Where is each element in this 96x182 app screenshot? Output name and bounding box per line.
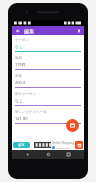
button[interactable]: 価格	[15, 56, 81, 70]
staticText: なし	[15, 98, 24, 103]
staticText: なし	[15, 44, 24, 49]
staticText: 新しいカテゴリー名	[15, 110, 47, 114]
staticText: Google Play	[56, 146, 70, 149]
staticText: 200.0	[15, 80, 26, 85]
staticText: 割引クーポン	[15, 92, 37, 96]
button[interactable]: Online Shopping	[34, 140, 74, 149]
button[interactable]: Back	[14, 27, 21, 34]
button[interactable]: 割引クーポン	[15, 92, 81, 106]
staticText: 141.80	[15, 116, 28, 121]
button[interactable]: クーポン	[15, 38, 81, 52]
button[interactable]: Add item	[66, 119, 79, 132]
button[interactable]: Back	[23, 150, 32, 159]
staticText: 価格	[15, 56, 22, 60]
button[interactable]: Open	[75, 141, 83, 149]
button[interactable]: 新しいカテゴリー名	[15, 110, 81, 124]
staticText: 保存	[18, 143, 25, 147]
staticText: 単価	[15, 74, 22, 78]
button[interactable]: Recent apps	[64, 150, 73, 159]
staticText: Online Shopping	[52, 141, 74, 145]
staticText: 編集	[24, 28, 34, 34]
button[interactable]: 保存	[13, 142, 30, 148]
button[interactable]: Delete	[75, 27, 82, 34]
staticText: 176円	[15, 62, 26, 67]
staticText: クーポン	[15, 38, 30, 42]
button[interactable]: Home	[44, 150, 53, 159]
button[interactable]: 単価	[15, 74, 81, 88]
